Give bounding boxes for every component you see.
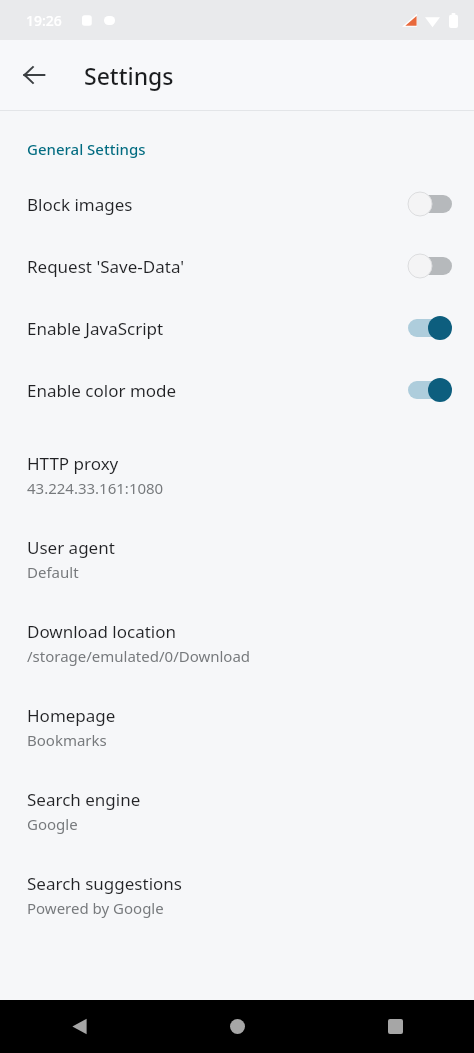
staticText: Google (27, 814, 78, 834)
button[interactable]: Recent apps (316, 1000, 474, 1053)
staticText: Search engine (27, 788, 141, 811)
button[interactable]: Back (0, 1000, 158, 1053)
staticText: Enable color mode (27, 379, 408, 402)
staticText: General Settings (27, 139, 146, 159)
button[interactable]: HTTP proxy (0, 433, 474, 517)
staticText: Homepage (27, 704, 116, 727)
button[interactable]: User agent (0, 517, 474, 601)
button[interactable]: Enable color mode (0, 359, 474, 421)
staticText: Block images (27, 193, 408, 216)
button[interactable]: Back (10, 51, 58, 99)
button[interactable]: Block images (0, 173, 474, 235)
staticText: Powered by Google (27, 898, 164, 918)
staticText: Default (27, 562, 79, 582)
staticText: Bookmarks (27, 730, 107, 750)
staticText: User agent (27, 536, 115, 559)
staticText: Enable JavaScript (27, 317, 408, 340)
button[interactable]: Home (158, 1000, 316, 1053)
button[interactable]: Search suggestions (0, 853, 474, 937)
staticText: Download location (27, 620, 176, 643)
staticText: Settings (84, 60, 174, 91)
button[interactable]: Search engine (0, 769, 474, 853)
staticText: /storage/emulated/0/Download (27, 646, 251, 666)
button[interactable]: Request 'Save-Data' (0, 235, 474, 297)
staticText: 19:26 (26, 11, 62, 30)
staticText: 43.224.33.161:1080 (27, 478, 164, 498)
button[interactable]: Download location (0, 601, 474, 685)
button[interactable]: Enable JavaScript (0, 297, 474, 359)
staticText: Search suggestions (27, 872, 182, 895)
staticText: Request 'Save-Data' (27, 255, 408, 278)
button[interactable]: Homepage (0, 685, 474, 769)
staticText: HTTP proxy (27, 452, 119, 475)
